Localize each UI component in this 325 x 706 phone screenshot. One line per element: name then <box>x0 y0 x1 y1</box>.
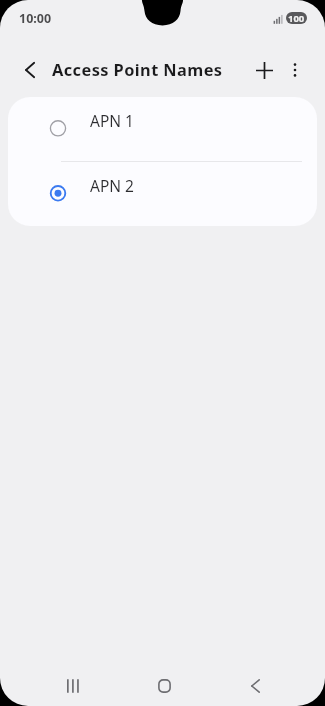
staticText: APN 2 <box>90 175 134 196</box>
button[interactable]: APN 2 <box>8 162 317 226</box>
staticText: Access Point Names <box>52 58 223 80</box>
button[interactable]: Navigate up <box>6 46 54 94</box>
button[interactable]: Recent apps <box>49 662 97 706</box>
button[interactable]: Add APN <box>244 50 284 90</box>
staticText: APN 1 <box>90 110 134 131</box>
button[interactable]: Back <box>231 662 279 706</box>
staticText: 100 <box>288 12 305 24</box>
staticText: 10:00 <box>19 10 52 27</box>
button[interactable]: APN 1 <box>8 97 317 161</box>
button[interactable]: More options <box>277 52 313 88</box>
button[interactable]: Home <box>140 662 188 706</box>
